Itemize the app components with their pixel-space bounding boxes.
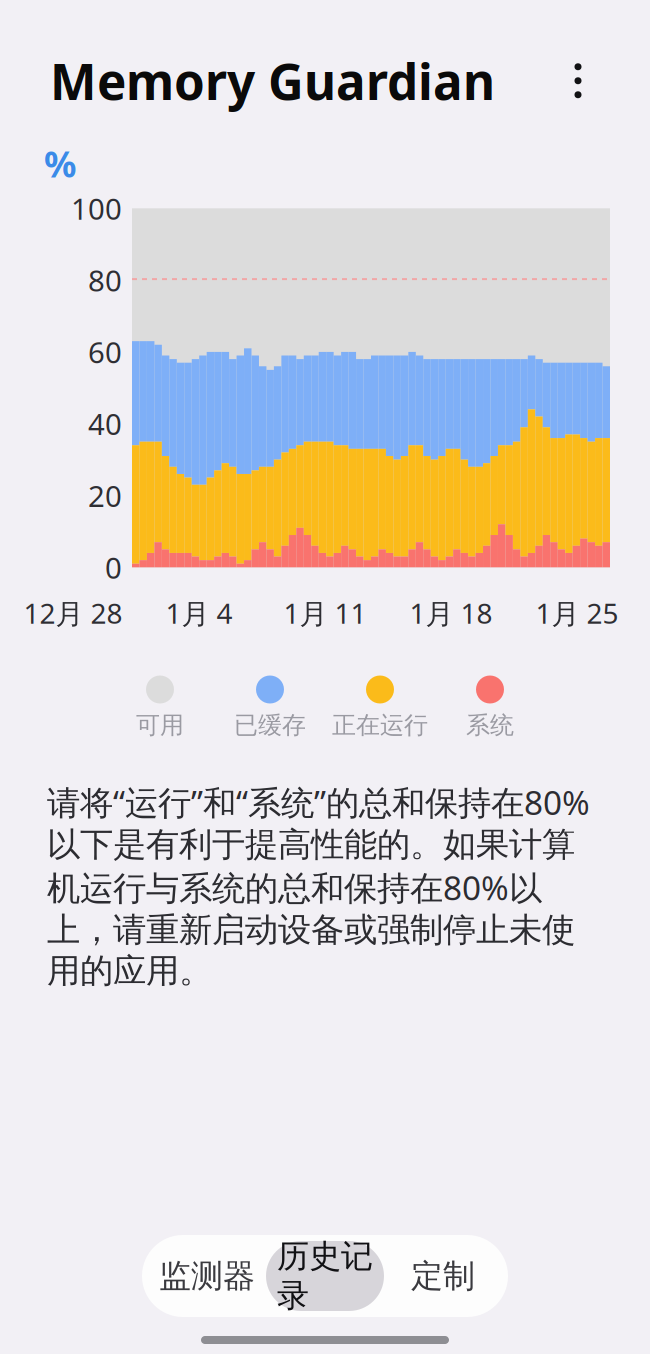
staticText: 历史记录 bbox=[277, 1237, 373, 1315]
staticText: 定制 bbox=[411, 1256, 475, 1296]
staticText: 系统 bbox=[466, 710, 514, 740]
staticText: 100 bbox=[71, 189, 122, 228]
staticText: 监测器 bbox=[159, 1256, 255, 1296]
staticText: 20 bbox=[88, 476, 122, 515]
button[interactable]: 系统 bbox=[435, 675, 545, 740]
staticText: 可用 bbox=[136, 710, 184, 740]
button[interactable]: 定制 bbox=[384, 1241, 502, 1311]
staticText: 1月 25 bbox=[535, 594, 618, 631]
staticText: 60 bbox=[88, 332, 122, 371]
staticText: 1月 11 bbox=[283, 594, 366, 631]
staticText: 1月 18 bbox=[409, 594, 492, 631]
button[interactable]: More options bbox=[556, 59, 600, 103]
button[interactable]: 可用 bbox=[105, 675, 215, 740]
staticText: Memory Guardian bbox=[50, 48, 495, 113]
staticText: 1月 4 bbox=[165, 594, 232, 631]
button[interactable]: 历史记录 bbox=[266, 1241, 384, 1311]
staticText: 40 bbox=[88, 404, 122, 443]
staticText: 请将“运行”和“系统”的总和保持在80%以下是有利于提高性能的。如果计算机运行与… bbox=[47, 780, 590, 991]
button[interactable]: 监测器 bbox=[148, 1241, 266, 1311]
staticText: 80 bbox=[88, 261, 122, 300]
staticText: 正在运行 bbox=[332, 710, 428, 740]
staticText: 12月 28 bbox=[23, 594, 122, 631]
staticText: % bbox=[44, 139, 76, 187]
staticText: 已缓存 bbox=[234, 710, 306, 740]
button[interactable]: 正在运行 bbox=[325, 675, 435, 740]
staticText: 0 bbox=[105, 548, 122, 587]
button[interactable]: 已缓存 bbox=[215, 675, 325, 740]
